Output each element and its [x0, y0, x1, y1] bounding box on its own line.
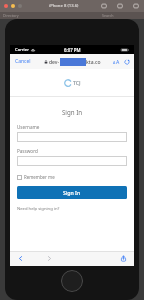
staticText: A	[116, 58, 120, 65]
staticText: Carrier	[15, 47, 29, 53]
button[interactable]: Lock	[133, 3, 139, 9]
staticText: Remember me	[24, 174, 55, 180]
button[interactable]: Reload	[124, 59, 130, 65]
button[interactable]: Close	[4, 4, 8, 8]
button[interactable]: Minimize	[11, 4, 15, 8]
button[interactable]	[17, 156, 127, 166]
other: Zoom	[18, 4, 22, 8]
staticText: Search	[102, 13, 114, 18]
staticText: Directory	[3, 13, 19, 18]
button[interactable]	[17, 132, 127, 142]
staticText: iPhone 8 (13.6)	[49, 3, 79, 9]
button[interactable]: Sign In	[17, 186, 127, 199]
button[interactable]: Back	[17, 255, 24, 262]
staticText: Password	[17, 148, 38, 154]
staticText: dev-	[49, 59, 60, 66]
staticText: 6:07 PM	[64, 47, 81, 53]
button[interactable]: Home	[61, 270, 83, 292]
button[interactable]: Remember me	[17, 173, 55, 181]
button[interactable]: Cancel	[14, 57, 32, 66]
button[interactable]: Screenshot	[101, 3, 107, 9]
button[interactable]: Share	[120, 255, 127, 262]
staticText: Username	[17, 124, 40, 130]
button[interactable]: Text size	[112, 57, 121, 66]
staticText: kta.co	[86, 59, 101, 66]
staticText: Sign In	[10, 108, 134, 116]
staticText: A	[113, 60, 116, 65]
button[interactable]: dev-	[36, 58, 109, 66]
other: Forward	[46, 255, 53, 262]
button[interactable]: Home	[117, 3, 123, 9]
button[interactable]: Need help signing in?	[17, 206, 60, 212]
staticText: TCJ	[73, 80, 81, 87]
staticText: Sign In	[63, 189, 81, 196]
